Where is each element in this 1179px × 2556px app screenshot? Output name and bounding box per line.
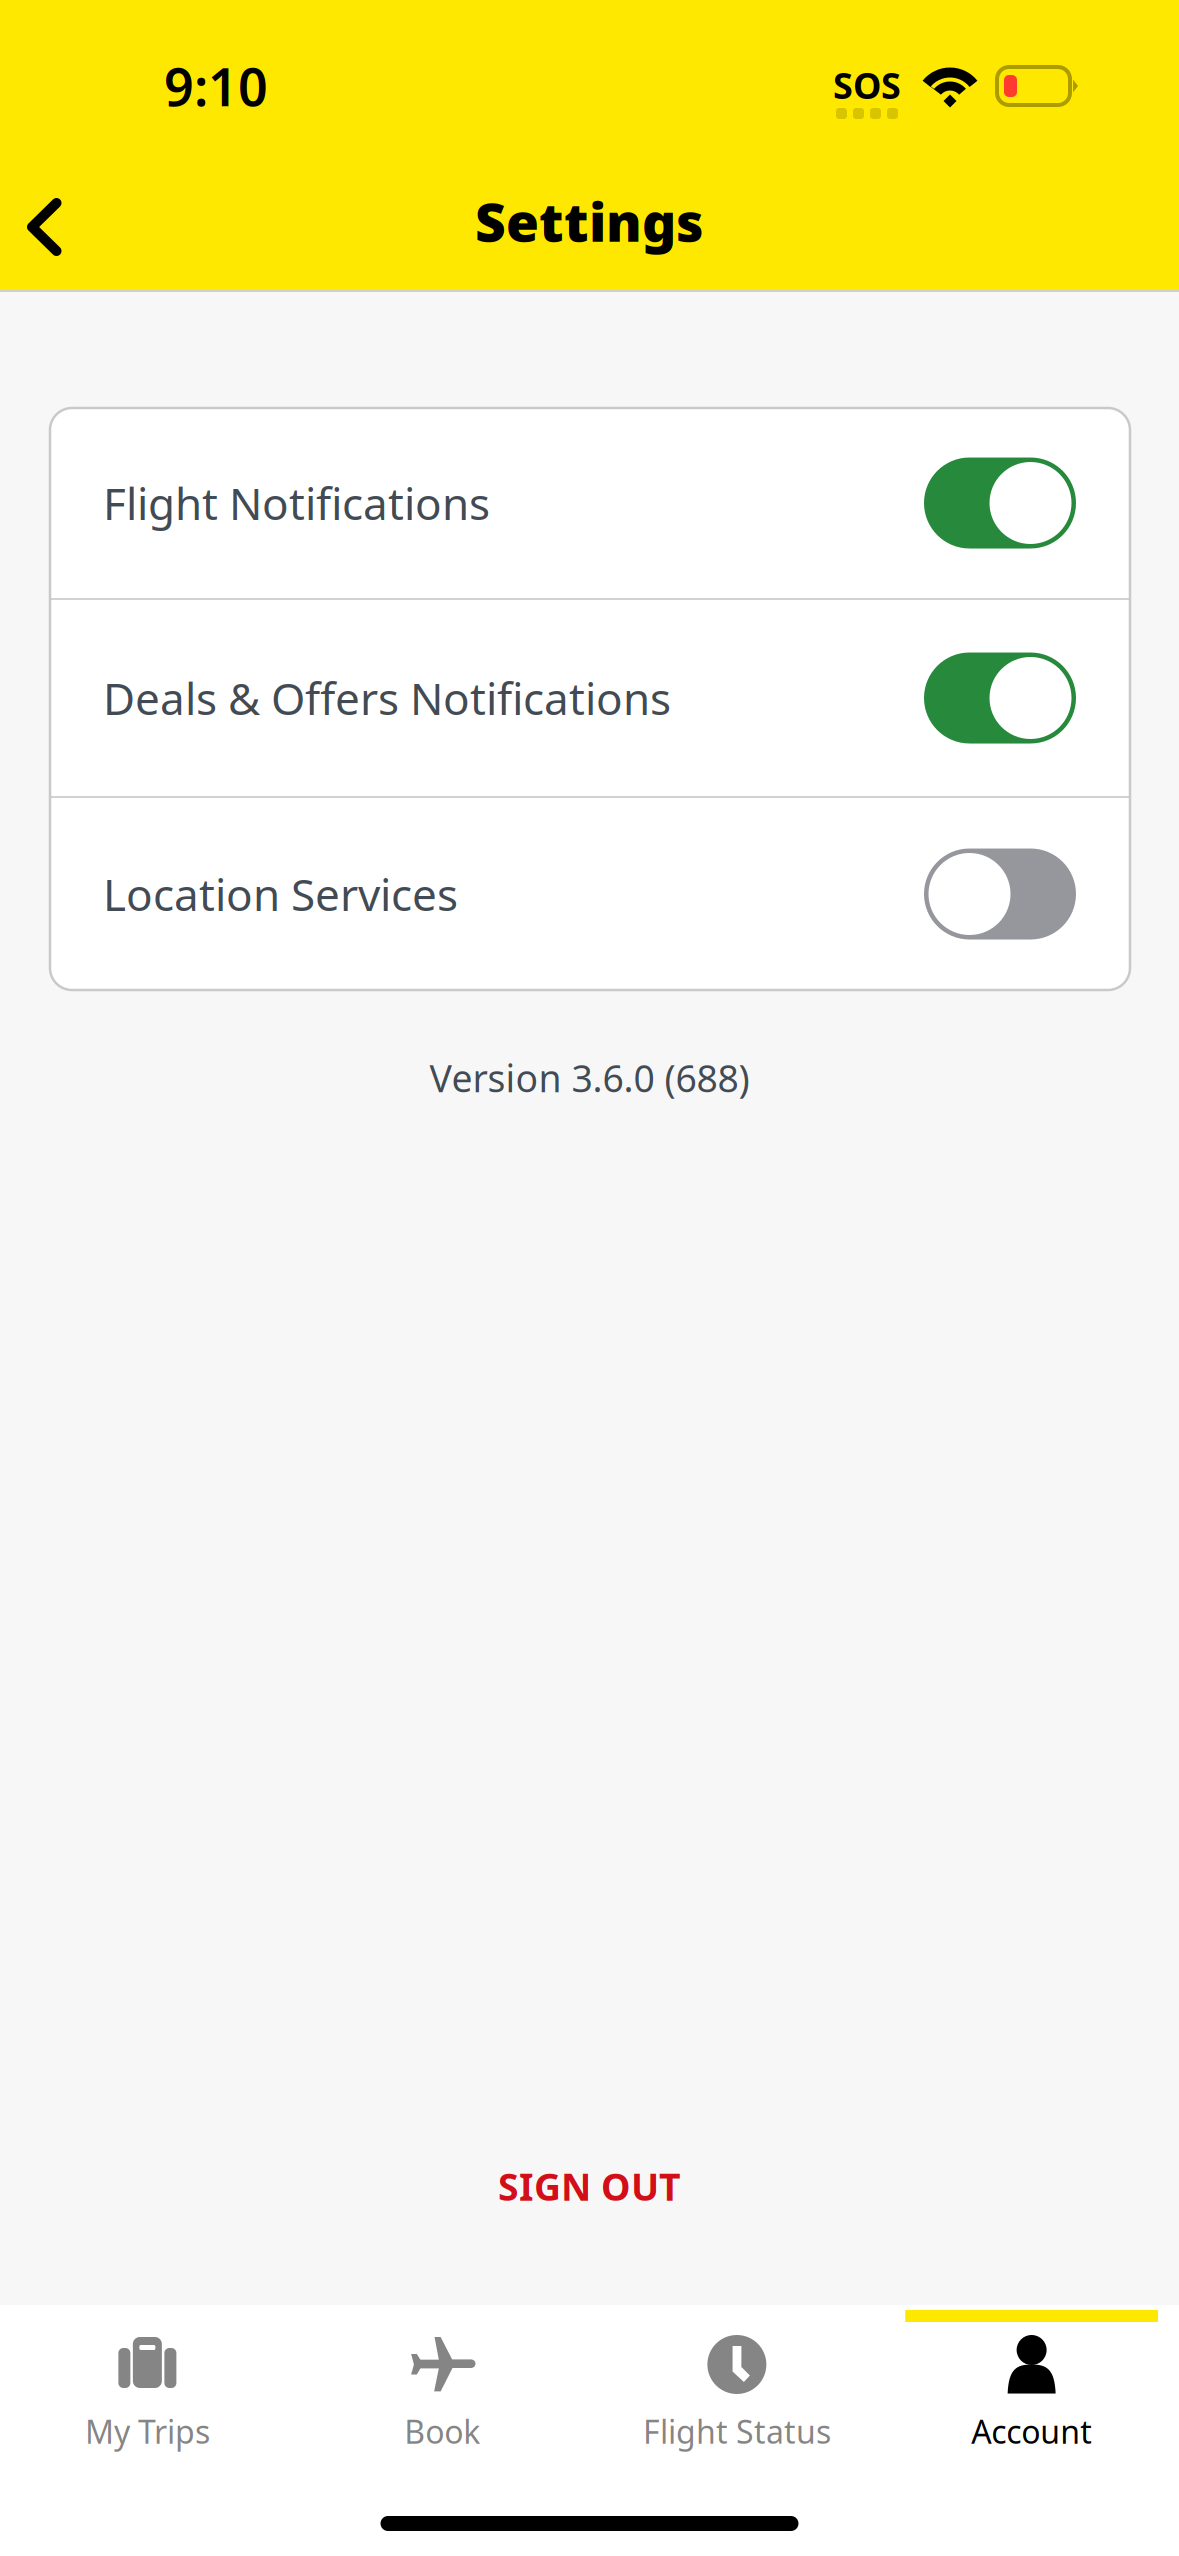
staticText: SIGN OUT: [498, 2161, 681, 2211]
button[interactable]: SIGN OUT: [438, 2137, 741, 2235]
staticText: 9:10: [164, 51, 268, 121]
button[interactable]: Location Services: [50, 798, 1130, 990]
staticText: My Trips: [85, 2410, 210, 2452]
button[interactable]: Flight Status: [589, 2305, 884, 2465]
staticText: Location Services: [103, 865, 458, 923]
button[interactable]: Account: [884, 2305, 1179, 2465]
staticText: Version 3.6.0 (688): [429, 1053, 749, 1103]
button[interactable]: Book: [295, 2305, 590, 2465]
staticText: Flight Notifications: [103, 474, 490, 532]
staticText: SOS: [833, 61, 901, 109]
button[interactable]: Deals & Offers Notifications: [50, 600, 1130, 796]
staticText: Deals & Offers Notifications: [103, 669, 671, 727]
button[interactable]: My Trips: [0, 2305, 295, 2465]
staticText: Book: [404, 2410, 480, 2452]
staticText: Flight Status: [643, 2410, 831, 2452]
button[interactable]: Flight Notifications: [50, 408, 1130, 598]
staticText: Settings: [475, 186, 704, 256]
staticText: Account: [971, 2410, 1092, 2452]
button[interactable]: Back: [0, 176, 106, 286]
